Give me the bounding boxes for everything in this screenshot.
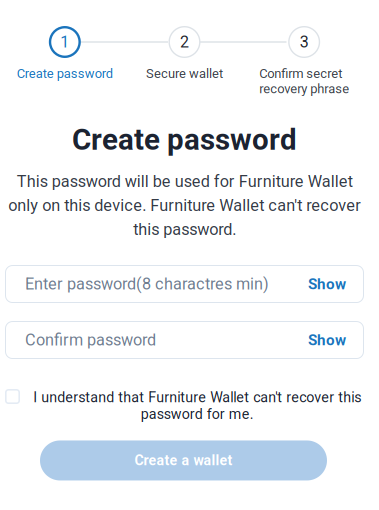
button[interactable]: Show <box>308 331 346 349</box>
staticText: This password will be used for Furniture… <box>8 172 361 239</box>
staticText: Enter password(8 charactres min) <box>25 274 269 294</box>
staticText: Show <box>308 275 346 293</box>
staticText: Confirm secret recovery phrase <box>259 66 349 96</box>
staticText: Create a wallet <box>134 452 232 469</box>
staticText: Secure wallet <box>146 66 223 81</box>
button[interactable]: I understand that Furniture Wallet can't… <box>5 389 20 404</box>
button[interactable]: Show <box>308 275 346 293</box>
staticText: 2 <box>180 33 189 51</box>
staticText: I understand that Furniture Wallet can't… <box>33 389 361 422</box>
staticText: 3 <box>300 33 309 51</box>
staticText: Confirm password <box>25 330 156 350</box>
button[interactable]: Create a wallet <box>40 440 327 480</box>
staticText: Show <box>308 331 346 349</box>
staticText: Create password <box>72 122 297 157</box>
staticText: 1 <box>60 33 69 51</box>
staticText: Create password <box>17 66 113 81</box>
